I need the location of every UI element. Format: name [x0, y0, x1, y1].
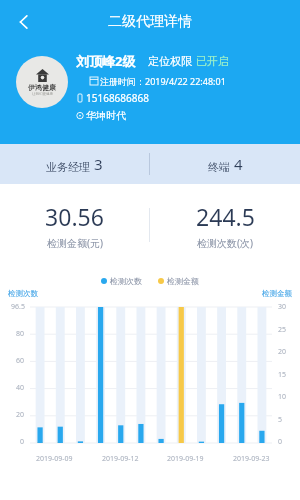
staticText: 10 [278, 392, 287, 402]
staticText: 30 [278, 302, 287, 312]
staticText: 5 [278, 415, 283, 425]
staticText: 60 [16, 356, 25, 366]
staticText: 4 [234, 154, 243, 174]
staticText: 终端 [208, 160, 230, 174]
staticText: 2019-09-23 [233, 454, 270, 464]
staticText: 让我们更健康 [32, 92, 53, 96]
staticText: 25 [278, 325, 287, 335]
button[interactable]: 244.5 [150, 184, 300, 266]
staticText: 15 [278, 370, 287, 380]
staticText: 检测金额(元) [47, 236, 103, 250]
staticText: 检测金额 [167, 276, 199, 286]
staticText: 检测次数 [110, 276, 142, 286]
staticText: 伊鸿健康 [28, 83, 56, 92]
staticText: 80 [16, 329, 25, 339]
staticText: 刘顶峰2级 [76, 52, 136, 70]
staticText: 检测次数(次) [197, 236, 253, 250]
staticText: 检测次数 [8, 289, 38, 298]
staticText: 20 [16, 410, 25, 420]
staticText: 二级代理详情 [108, 13, 192, 31]
staticText: 40 [16, 383, 25, 393]
staticText: 244.5 [196, 201, 255, 232]
staticText: 0 [20, 437, 25, 447]
staticText: 注册时间：2019/4/22 22:48:01 [100, 75, 226, 87]
button[interactable]: 业务经理 [0, 144, 149, 184]
staticText: 2019-09-09 [36, 454, 73, 464]
staticText: 96.5 [11, 302, 25, 312]
staticText: 2019-09-19 [167, 454, 204, 464]
staticText: 3 [94, 154, 103, 174]
staticText: 华坤时代 [86, 109, 126, 122]
staticText: 2019-09-12 [102, 454, 139, 464]
staticText: 20 [278, 347, 287, 357]
button[interactable]: 终端 [150, 144, 300, 184]
staticText: 检测金额 [262, 289, 292, 298]
staticText: 15168686868 [86, 91, 149, 105]
staticText: 定位权限 [148, 54, 192, 68]
staticText: 30.56 [45, 201, 104, 232]
button[interactable]: 30.56 [0, 184, 149, 266]
staticText: 已开启 [196, 54, 229, 68]
button[interactable]: Back [6, 4, 42, 40]
staticText: 0 [278, 437, 283, 447]
staticText: 业务经理 [46, 160, 90, 174]
